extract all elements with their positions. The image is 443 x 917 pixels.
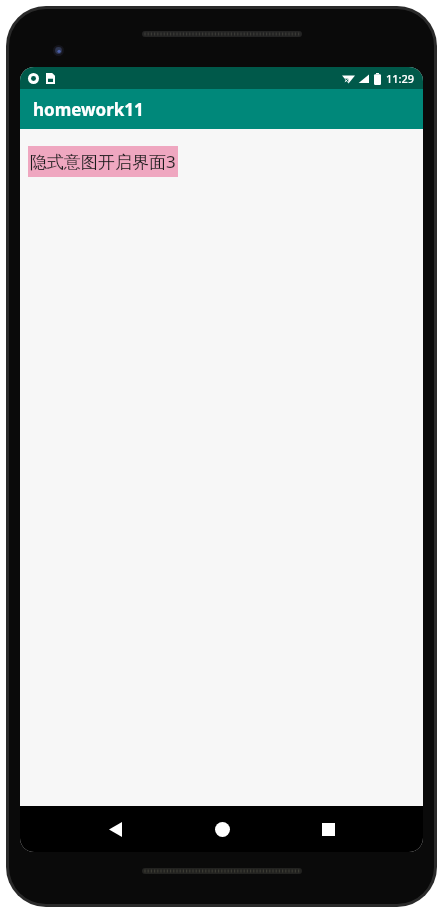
staticText: 11:29 <box>386 71 415 86</box>
button[interactable]: Back <box>62 806 169 852</box>
staticText: homework11 <box>33 98 144 121</box>
staticText: 隐式意图开启界面3 <box>30 150 176 173</box>
button[interactable]: Home <box>169 806 275 852</box>
button[interactable]: Recent apps <box>275 806 381 852</box>
button[interactable]: 隐式意图开启界面3 <box>28 146 178 177</box>
